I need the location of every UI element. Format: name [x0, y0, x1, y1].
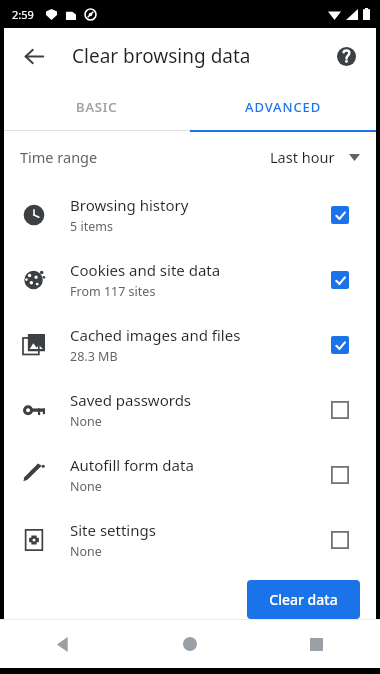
staticText: Cached images and files: [70, 325, 241, 345]
staticText: None: [70, 478, 102, 495]
staticText: Saved passwords: [70, 390, 192, 410]
button[interactable]: Back: [0, 620, 126, 668]
staticText: Time range: [20, 147, 98, 167]
staticText: ADVANCED: [245, 98, 322, 116]
staticText: Autofill form data: [70, 455, 194, 475]
button[interactable]: Cached images and files: [4, 312, 376, 377]
button[interactable]: Browsing history: [4, 182, 376, 247]
button[interactable]: Cached images and files checked: [320, 325, 360, 365]
staticText: From 117 sites: [70, 283, 156, 300]
staticText: 2:59: [12, 7, 34, 22]
staticText: None: [70, 413, 102, 430]
staticText: BASIC: [76, 98, 118, 116]
button[interactable]: Autofill form data: [4, 442, 376, 507]
staticText: Clear browsing data: [72, 43, 251, 69]
button[interactable]: Recents: [253, 620, 380, 668]
button[interactable]: Time range: [4, 132, 376, 182]
staticText: Cookies and site data: [70, 260, 221, 280]
button[interactable]: Help: [326, 36, 366, 76]
button[interactable]: Saved passwords unchecked: [320, 390, 360, 430]
button[interactable]: Saved passwords: [4, 377, 376, 442]
staticText: None: [70, 543, 102, 560]
staticText: 5 items: [70, 218, 113, 235]
button[interactable]: Site settings: [4, 507, 376, 572]
staticText: Last hour: [270, 147, 335, 167]
button[interactable]: Cookies and site data checked: [320, 260, 360, 300]
button[interactable]: Browsing history checked: [320, 195, 360, 235]
staticText: 28.3 MB: [70, 348, 118, 365]
button[interactable]: Site settings unchecked: [320, 520, 360, 560]
button[interactable]: ADVANCED: [190, 84, 376, 130]
button[interactable]: Back: [12, 34, 56, 78]
button[interactable]: Cookies and site data: [4, 247, 376, 312]
button[interactable]: Home: [126, 620, 253, 668]
staticText: Clear data: [269, 590, 338, 609]
staticText: Browsing history: [70, 195, 189, 215]
button[interactable]: BASIC: [4, 84, 190, 130]
staticText: Site settings: [70, 520, 156, 540]
button[interactable]: Autofill form data unchecked: [320, 455, 360, 495]
button[interactable]: Clear data: [247, 580, 360, 619]
